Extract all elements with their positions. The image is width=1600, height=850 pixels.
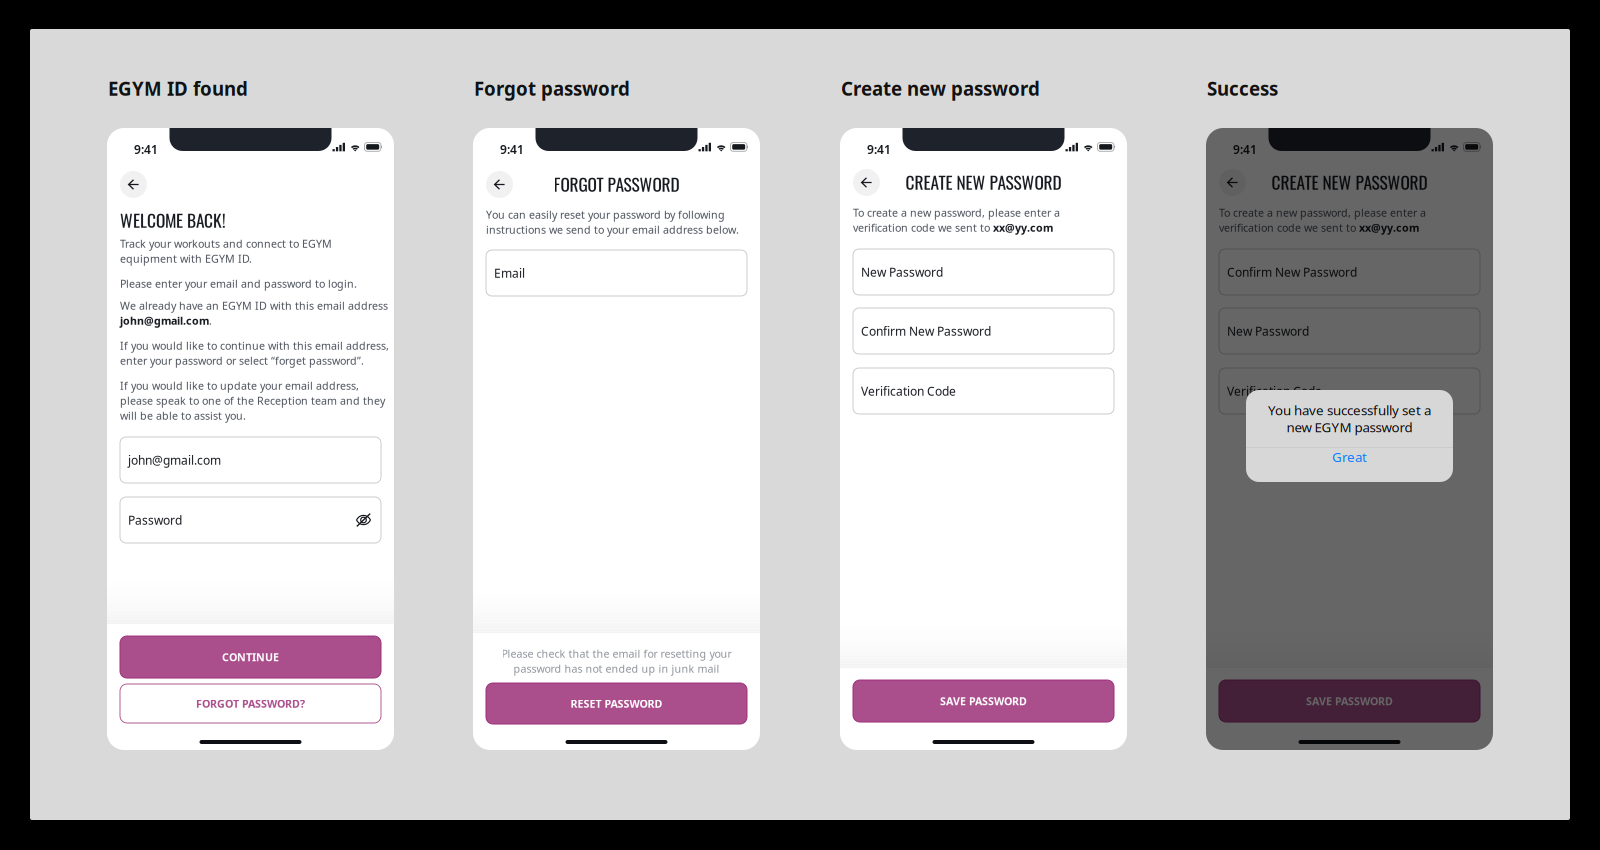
button[interactable]: Confirm New Password	[1219, 249, 1480, 295]
staticText: xx@yy.com	[1359, 220, 1419, 235]
staticText: Track your workouts and connect to EGYM	[120, 236, 332, 251]
button[interactable]: CONTINUE	[120, 636, 381, 678]
button[interactable]: SAVE PASSWORD	[853, 680, 1114, 722]
staticText: CREATE NEW PASSWORD	[1271, 169, 1427, 195]
button[interactable]: Show password	[356, 513, 371, 527]
staticText: If you would like to update your email a…	[120, 378, 359, 393]
staticText: will be able to assist you.	[120, 408, 246, 423]
button[interactable]: Back	[853, 169, 880, 196]
staticText: EGYM ID found	[108, 76, 248, 101]
staticText: new EGYM password	[1286, 418, 1412, 436]
staticText: SAVE PASSWORD	[1306, 694, 1393, 708]
staticText: xx@yy.com	[993, 220, 1053, 235]
staticText: New Password	[861, 264, 943, 280]
button[interactable]: FORGOT PASSWORD?	[120, 684, 381, 723]
button[interactable]: Email	[486, 250, 747, 296]
button[interactable]: Great	[1246, 448, 1453, 482]
button[interactable]: New Password	[1219, 308, 1480, 354]
staticText: verification code we sent to	[853, 220, 993, 235]
staticText: 9:41	[867, 141, 891, 157]
staticText: You can easily reset your password by fo…	[486, 207, 725, 222]
staticText: Verification Code	[861, 383, 956, 399]
staticText: WELCOME BACK!	[120, 207, 226, 233]
button[interactable]: RESET PASSWORD	[486, 683, 747, 724]
staticText: verification code we sent to	[1219, 220, 1359, 235]
button[interactable]: Password	[120, 497, 381, 543]
staticText: RESET PASSWORD	[570, 696, 662, 711]
button[interactable]: Back	[486, 171, 513, 198]
staticText: .	[209, 313, 212, 328]
staticText: Verification Code	[1227, 383, 1322, 399]
staticText: 9:41	[1233, 141, 1257, 157]
staticText: please speak to one of the Reception tea…	[120, 393, 385, 408]
button[interactable]: Confirm New Password	[853, 308, 1114, 354]
staticText: We already have an EGYM ID with this ema…	[120, 298, 388, 313]
staticText: CREATE NEW PASSWORD	[905, 169, 1061, 195]
staticText: To create a new password, please enter a	[1219, 205, 1426, 220]
staticText: You have successfully set a	[1268, 401, 1431, 419]
staticText: Forgot password	[474, 76, 630, 101]
staticText: Password	[128, 512, 182, 528]
button[interactable]: john@gmail.com	[120, 437, 381, 483]
staticText: FORGOT PASSWORD	[553, 171, 679, 197]
staticText: 9:41	[500, 141, 524, 157]
button[interactable]: SAVE PASSWORD	[1219, 680, 1480, 722]
staticText: Confirm New Password	[1227, 264, 1357, 280]
staticText: FORGOT PASSWORD?	[196, 696, 305, 711]
staticText: john@gmail.com	[120, 313, 209, 328]
button[interactable]: New Password	[853, 249, 1114, 295]
staticText: Please check that the email for resettin…	[501, 646, 731, 661]
staticText: Create new password	[841, 76, 1040, 101]
button[interactable]: Back	[1219, 169, 1246, 196]
button[interactable]: Verification Code	[1219, 368, 1480, 414]
staticText: password has not ended up in junk mail	[513, 661, 719, 676]
staticText: If you would like to continue with this …	[120, 338, 389, 353]
staticText: instructions we send to your email addre…	[486, 222, 739, 237]
staticText: SAVE PASSWORD	[940, 694, 1027, 708]
staticText: CONTINUE	[222, 650, 279, 664]
staticText: Confirm New Password	[861, 323, 991, 339]
staticText: equipment with EGYM ID.	[120, 251, 252, 266]
staticText: To create a new password, please enter a	[853, 205, 1060, 220]
staticText: 9:41	[134, 141, 158, 157]
staticText: Please enter your email and password to …	[120, 276, 357, 291]
button[interactable]: Back	[120, 171, 147, 198]
staticText: john@gmail.com	[128, 452, 221, 468]
staticText: enter your password or select “forget pa…	[120, 353, 364, 368]
button[interactable]: Verification Code	[853, 368, 1114, 414]
staticText: Success	[1207, 76, 1278, 101]
staticText: New Password	[1227, 323, 1309, 339]
staticText: Email	[494, 265, 525, 281]
staticText: Great	[1332, 448, 1367, 465]
